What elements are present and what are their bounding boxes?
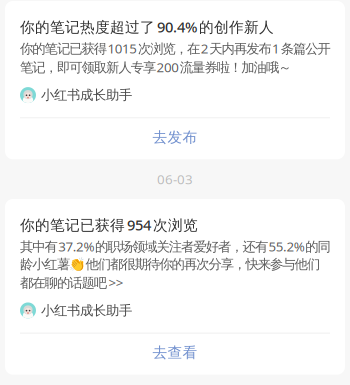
staticText: 其中有 37.2% 的职场领域关注者爱好者，还有 55.2% 的同龄小红薯👏他们… xyxy=(20,237,331,291)
staticText: 06-03 xyxy=(157,170,193,188)
staticText: 你的笔记已获得 954 次浏览 xyxy=(20,215,198,234)
button[interactable]: 去查看 xyxy=(20,334,330,375)
staticText: 去查看 xyxy=(152,344,197,362)
staticText: 你的笔记已获得 1015 次浏览，在 2 天内再发布 1 条篇公开笔记，即可领取… xyxy=(20,39,331,76)
staticText: 小红书成长助手 xyxy=(41,302,132,319)
button[interactable]: 去发布 xyxy=(20,118,330,159)
staticText: 小红书成长助手 xyxy=(41,87,132,103)
staticText: 你的笔记热度超过了 90.4% 的创作新人 xyxy=(20,17,274,36)
staticText: 去发布 xyxy=(152,128,197,146)
